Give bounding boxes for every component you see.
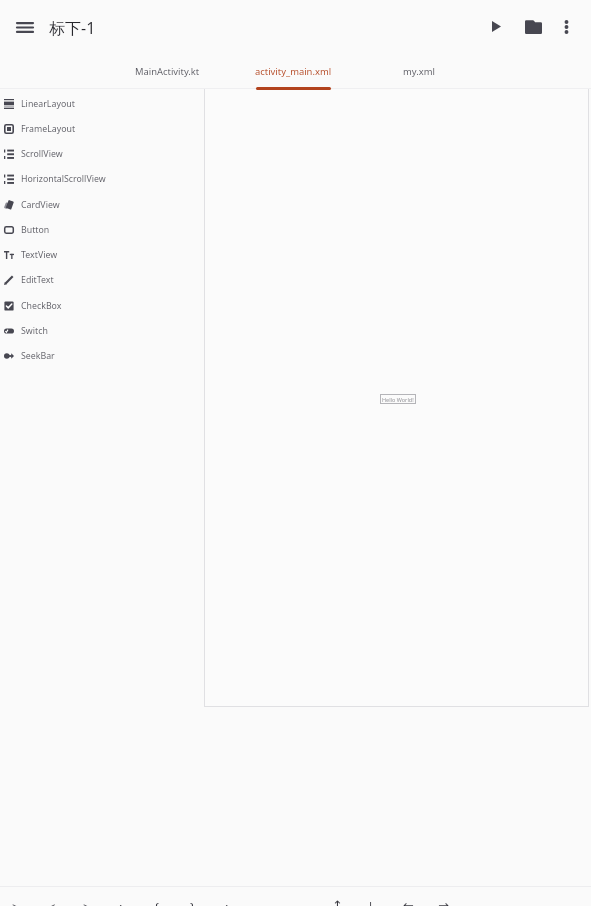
- button[interactable]: <: [41, 887, 74, 906]
- staticText: Switch: [21, 325, 48, 337]
- button[interactable]: EditText: [0, 267, 204, 292]
- button[interactable]: ;: [112, 887, 145, 906]
- button[interactable]: Button: [0, 217, 204, 242]
- button[interactable]: {: [147, 887, 180, 906]
- staticText: Button: [21, 224, 50, 236]
- button[interactable]: FrameLayout: [0, 116, 204, 141]
- button[interactable]: my.xml: [364, 55, 474, 88]
- button[interactable]: HorizontalScrollView: [0, 166, 204, 191]
- staticText: >: [12, 898, 20, 906]
- staticText: ←: [403, 898, 414, 906]
- button[interactable]: CheckBox: [0, 293, 204, 318]
- button[interactable]: :: [218, 887, 251, 906]
- button[interactable]: TextView: [0, 242, 204, 267]
- staticText: <: [48, 898, 56, 906]
- staticText: >: [83, 898, 91, 906]
- button[interactable]: →: [431, 887, 464, 906]
- staticText: |: [367, 898, 375, 906]
- staticText: ↑: [332, 898, 343, 906]
- staticText: {: [154, 898, 159, 906]
- button[interactable]: SeekBar: [0, 343, 204, 368]
- staticText: activity_main.xml: [255, 65, 332, 78]
- staticText: ;: [119, 898, 123, 906]
- staticText: ScrollView: [21, 148, 63, 160]
- staticText: 标下-1: [49, 17, 96, 39]
- button[interactable]: }: [183, 887, 216, 906]
- staticText: SeekBar: [21, 350, 55, 362]
- button[interactable]: More options: [549, 9, 584, 44]
- button[interactable]: >: [5, 887, 38, 906]
- staticText: →: [438, 898, 449, 906]
- staticText: EditText: [21, 274, 54, 286]
- staticText: FrameLayout: [21, 123, 76, 135]
- button[interactable]: |: [360, 887, 393, 906]
- staticText: Hello World!: [382, 396, 414, 403]
- staticText: :: [225, 898, 229, 906]
- staticText: LinearLayout: [21, 98, 75, 110]
- button[interactable]: Navigation menu: [7, 10, 42, 44]
- staticText: my.xml: [403, 65, 435, 78]
- button[interactable]: activity_main.xml: [238, 55, 348, 88]
- button[interactable]: CardView: [0, 192, 204, 217]
- button[interactable]: Open file: [516, 9, 551, 44]
- button[interactable]: Run: [479, 9, 514, 44]
- staticText: HorizontalScrollView: [21, 173, 106, 185]
- button[interactable]: Switch: [0, 318, 204, 343]
- button[interactable]: ↑: [325, 887, 358, 906]
- button[interactable]: ←: [396, 887, 429, 906]
- staticText: }: [190, 898, 195, 906]
- button[interactable]: LinearLayout: [0, 91, 204, 116]
- button[interactable]: ScrollView: [0, 141, 204, 166]
- staticText: CardView: [21, 199, 60, 211]
- button[interactable]: >: [76, 887, 109, 906]
- staticText: TextView: [21, 249, 58, 261]
- button[interactable]: MainActivity.kt: [112, 55, 222, 88]
- staticText: MainActivity.kt: [135, 65, 200, 78]
- staticText: CheckBox: [21, 300, 62, 312]
